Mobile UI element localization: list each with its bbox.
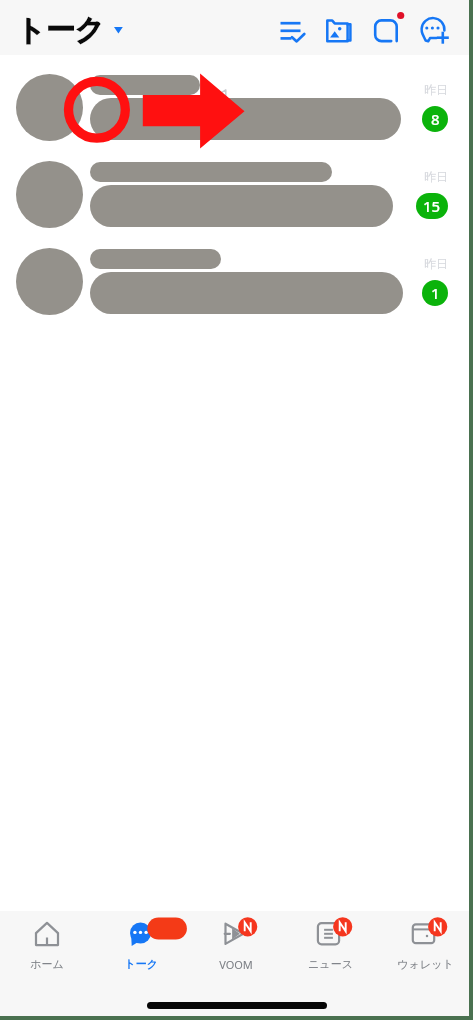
staticText: 15	[423, 196, 441, 216]
staticText: ホーム	[30, 957, 64, 971]
button[interactable]: New chat	[412, 6, 456, 50]
button[interactable]: ホーム	[0, 911, 94, 971]
staticText: 昨日	[424, 169, 448, 184]
button[interactable]: 昨日	[0, 64, 473, 151]
staticText: ウォレット	[397, 957, 454, 971]
staticText: 昨日	[424, 256, 448, 271]
button[interactable]: ニュース	[283, 911, 378, 971]
button[interactable]: ウォレット	[378, 911, 473, 971]
staticText: 1	[431, 283, 440, 303]
button[interactable]: 昨日	[0, 238, 473, 325]
staticText: VOOM	[219, 957, 253, 972]
button[interactable]: トーク	[94, 911, 188, 971]
staticText: トーク	[124, 957, 158, 971]
button[interactable]: トーク	[0, 9, 126, 46]
button[interactable]: 昨日	[0, 151, 473, 238]
staticText: トーク	[16, 12, 105, 49]
staticText: ニュース	[308, 957, 353, 971]
button[interactable]: Open chat	[364, 6, 408, 50]
button[interactable]: VOOM	[188, 911, 283, 972]
staticText: 昨日	[424, 82, 448, 97]
button[interactable]: Sort chats	[270, 6, 314, 50]
button[interactable]: Albums	[316, 6, 360, 50]
staticText: 8	[431, 109, 440, 129]
